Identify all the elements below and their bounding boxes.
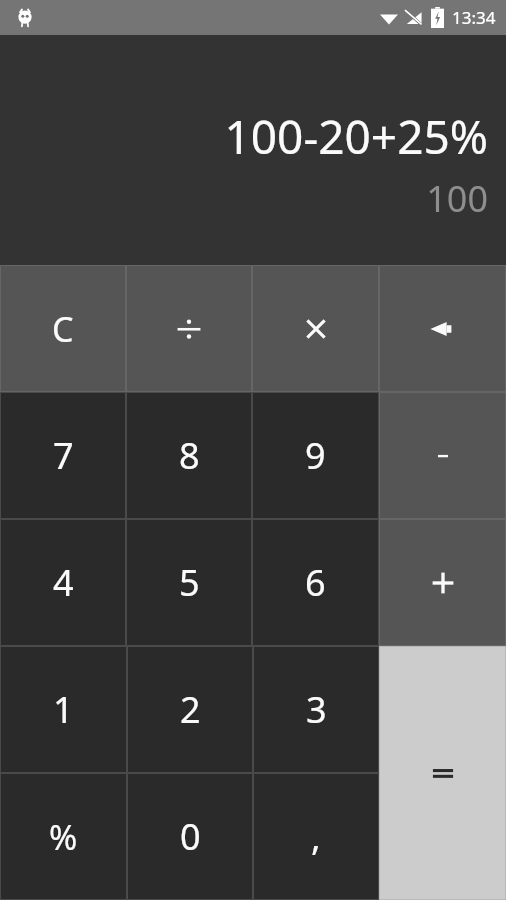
staticText: 6 bbox=[305, 558, 326, 607]
staticText: % bbox=[49, 814, 78, 860]
staticText: 2 bbox=[180, 685, 201, 734]
button[interactable]: 5 bbox=[127, 520, 251, 645]
button[interactable]: Percent bbox=[1, 774, 126, 899]
button[interactable]: Backspace bbox=[380, 266, 505, 391]
button[interactable]: Decimal comma bbox=[254, 774, 378, 899]
button[interactable]: 9 bbox=[253, 393, 378, 518]
staticText: 8 bbox=[179, 431, 200, 480]
button[interactable]: 7 bbox=[1, 393, 125, 518]
button[interactable]: 3 bbox=[254, 647, 378, 772]
button[interactable]: Equals bbox=[380, 647, 505, 899]
button[interactable]: Minus bbox=[380, 393, 505, 518]
staticText: C bbox=[52, 306, 74, 352]
button[interactable]: 8 bbox=[127, 393, 251, 518]
staticText: 0 bbox=[180, 812, 201, 861]
staticText: 5 bbox=[179, 558, 200, 607]
button[interactable]: 0 bbox=[128, 774, 252, 899]
button[interactable]: C bbox=[1, 266, 125, 391]
button[interactable]: Divide bbox=[127, 266, 251, 391]
button[interactable]: 1 bbox=[1, 647, 126, 772]
button[interactable]: Multiply bbox=[253, 266, 378, 391]
button[interactable]: 4 bbox=[1, 520, 125, 645]
button[interactable]: Plus bbox=[380, 520, 505, 645]
staticText: 13:34 bbox=[452, 6, 496, 29]
staticText: 9 bbox=[305, 431, 326, 480]
staticText: , bbox=[311, 812, 321, 861]
staticText: 100 bbox=[426, 174, 488, 223]
staticText: 1 bbox=[53, 685, 74, 734]
staticText: 100-20+25% bbox=[224, 105, 488, 168]
staticText: 3 bbox=[306, 685, 327, 734]
staticText: 7 bbox=[53, 431, 74, 480]
staticText: 4 bbox=[53, 558, 74, 607]
button[interactable]: 2 bbox=[128, 647, 252, 772]
button[interactable]: 6 bbox=[253, 520, 378, 645]
